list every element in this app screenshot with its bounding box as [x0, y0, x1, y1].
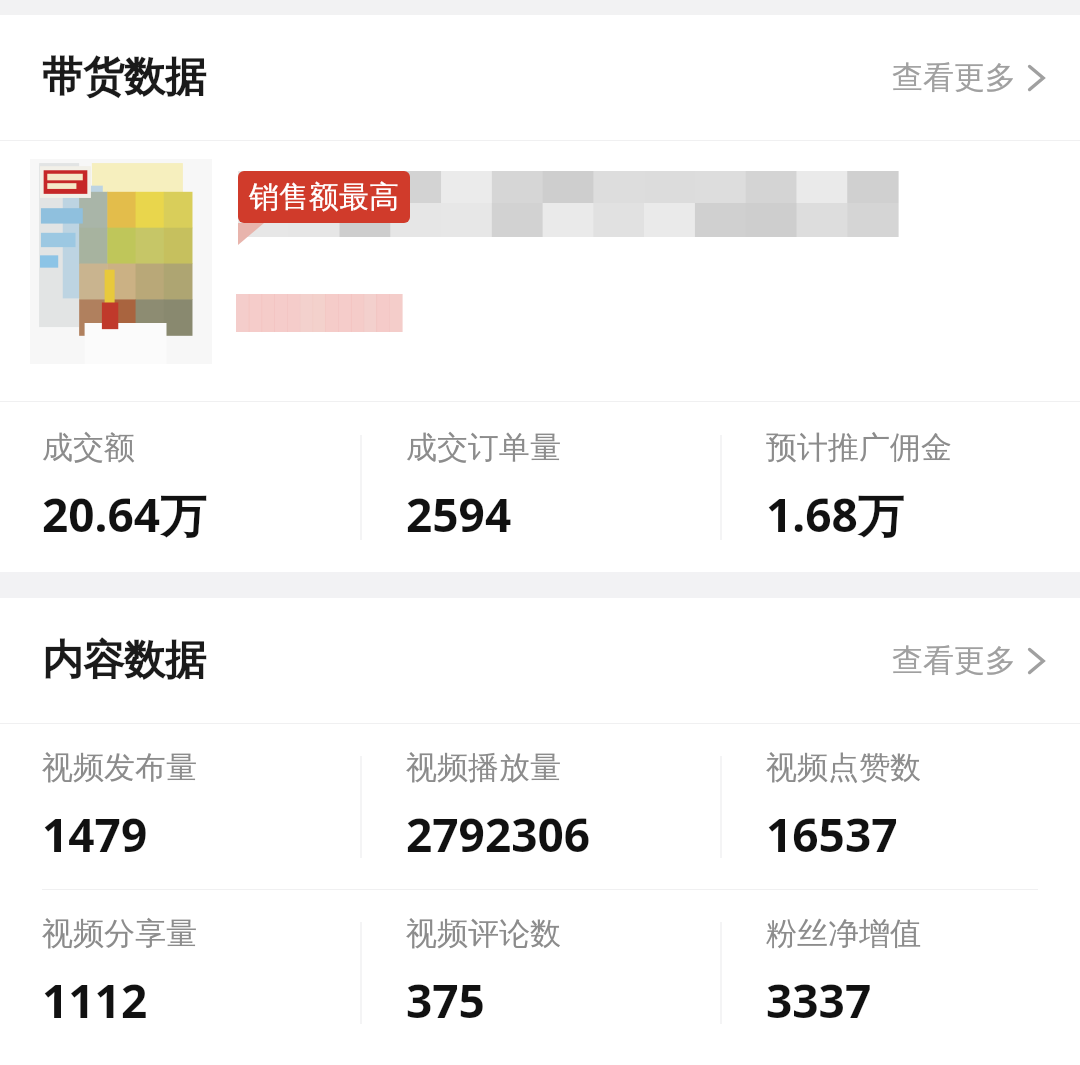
staticText: 内容数据 — [42, 635, 206, 687]
staticText: 视频点赞数 — [766, 748, 921, 787]
staticText: 1112 — [42, 969, 148, 1032]
staticText: 16537 — [766, 803, 898, 866]
staticText: 视频评论数 — [406, 914, 561, 953]
staticText: 查看更多 — [892, 641, 1016, 680]
staticText: 2594 — [406, 483, 512, 546]
staticText: 销售额最高 — [249, 178, 399, 216]
staticText: 3337 — [766, 969, 872, 1032]
button[interactable]: 销售额最高 — [0, 141, 1080, 401]
staticText: 视频分享量 — [42, 914, 197, 953]
staticText: 成交额 — [42, 428, 135, 467]
staticText: 带货数据 — [42, 52, 206, 104]
staticText: 预计推广佣金 — [766, 428, 952, 467]
staticText: 成交订单量 — [406, 428, 561, 467]
staticText: 查看更多 — [892, 58, 1016, 97]
staticText: 2792306 — [406, 803, 591, 866]
button[interactable]: 查看更多 — [886, 631, 1052, 690]
staticText: 1479 — [42, 803, 148, 866]
staticText: 20.64万 — [42, 483, 207, 546]
button[interactable]: 查看更多 — [886, 48, 1052, 107]
staticText: 视频播放量 — [406, 748, 561, 787]
staticText: 视频发布量 — [42, 748, 197, 787]
staticText: 375 — [406, 969, 485, 1032]
staticText: 1.68万 — [766, 483, 904, 546]
staticText: 粉丝净增值 — [766, 914, 921, 953]
